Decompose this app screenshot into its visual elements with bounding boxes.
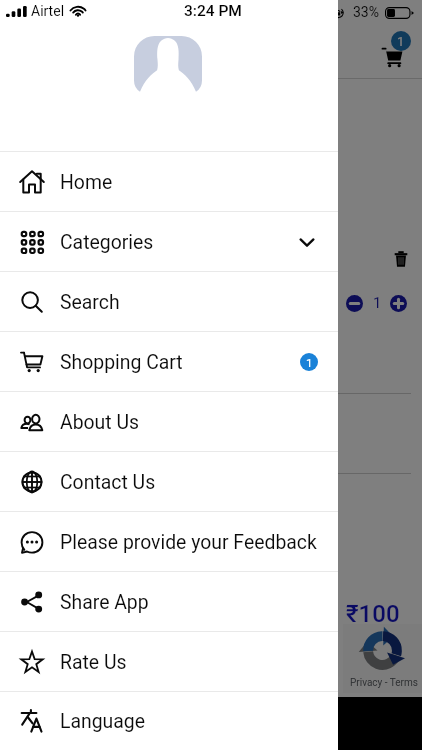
staticText: Search	[60, 291, 120, 314]
button[interactable]: Decrease quantity	[346, 295, 363, 312]
button[interactable]: Contact Us	[0, 452, 338, 511]
staticText: 1	[397, 34, 405, 49]
button[interactable]: Shopping Cart	[0, 332, 338, 391]
button[interactable]: Search	[0, 272, 338, 331]
staticText: Rate Us	[60, 651, 127, 674]
staticText: 3:24 PM	[184, 2, 242, 20]
button[interactable]: Language	[0, 692, 338, 750]
staticText: 1	[306, 356, 313, 369]
button[interactable]: Rate Us	[0, 632, 338, 691]
button[interactable]: Home	[0, 152, 338, 211]
staticText: 1	[373, 294, 382, 312]
staticText: ₹100	[346, 600, 400, 628]
button[interactable]: Categories	[0, 212, 338, 271]
staticText: Privacy - Terms	[350, 677, 418, 689]
button[interactable]: Share App	[0, 572, 338, 631]
staticText: Shopping Cart	[60, 351, 183, 374]
staticText: Language	[60, 710, 145, 733]
staticText: About Us	[60, 411, 140, 434]
staticText: 33%	[353, 4, 379, 20]
button[interactable]: About Us	[0, 392, 338, 451]
staticText: Home	[60, 171, 113, 194]
button[interactable]: Please provide your Feedback	[0, 512, 338, 571]
staticText: Contact Us	[60, 471, 156, 494]
staticText: Please provide your Feedback	[60, 531, 317, 554]
button[interactable]: Increase quantity	[390, 295, 407, 312]
button[interactable]: Cart	[381, 45, 405, 69]
staticText: Airtel	[31, 3, 65, 19]
button[interactable]: Delete item	[392, 250, 410, 268]
staticText: Share App	[60, 591, 149, 614]
staticText: Categories	[60, 231, 154, 254]
